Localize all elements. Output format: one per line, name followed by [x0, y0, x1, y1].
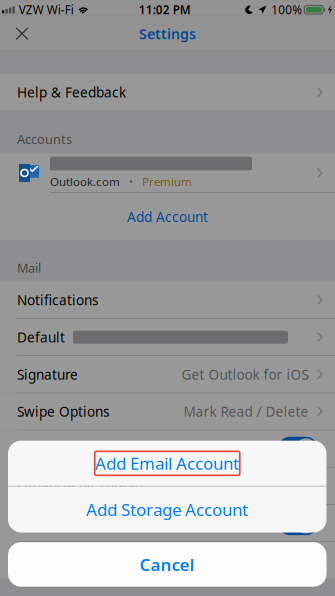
- button[interactable]: Outlook.com: [0, 153, 335, 192]
- button[interactable]: Focused Inbox: [0, 430, 335, 467]
- button[interactable]: Swipe Options: [0, 393, 335, 430]
- staticText: Mark Read / Delete: [184, 402, 309, 421]
- staticText: Get Outlook for iOS: [182, 365, 309, 384]
- staticText: Focused Inbox: [17, 439, 110, 458]
- staticText: Add Storage Account: [86, 498, 248, 521]
- staticText: Cancel: [140, 553, 195, 576]
- button[interactable]: Add Account: [0, 193, 335, 240]
- button[interactable]: Notifications: [0, 281, 335, 318]
- button[interactable]: Add Storage Account: [8, 487, 326, 532]
- staticText: Add Account: [127, 207, 208, 226]
- staticText: 100%: [271, 2, 302, 18]
- button[interactable]: Close: [0, 16, 44, 51]
- button[interactable]: Notifications: [0, 542, 335, 579]
- staticText: Default: [17, 328, 65, 346]
- button[interactable]: Mark As Read: [0, 505, 335, 541]
- staticText: Add Email Account: [95, 452, 239, 475]
- button[interactable]: Add Email Account: [8, 441, 326, 486]
- staticText: Mail: [17, 259, 41, 276]
- button[interactable]: Cancel: [8, 542, 326, 587]
- button[interactable]: Help & Feedback: [0, 74, 335, 110]
- button[interactable]: Signature: [0, 356, 335, 393]
- staticText: Notifications: [17, 291, 99, 309]
- staticText: Mark As Read: [17, 514, 106, 532]
- staticText: Organize by Thread: [17, 477, 143, 495]
- staticText: •: [120, 174, 142, 189]
- staticText: Swipe Options: [17, 402, 110, 421]
- staticText: Outlook.com: [50, 174, 120, 189]
- staticText: Premium: [142, 174, 192, 189]
- staticText: VZW Wi-Fi: [19, 2, 74, 18]
- button[interactable]: Default: [0, 319, 335, 355]
- staticText: Accounts: [17, 130, 72, 148]
- staticText: Signature: [17, 365, 78, 384]
- button[interactable]: Organize by Thread: [0, 468, 335, 504]
- staticText: Help & Feedback: [17, 83, 126, 101]
- staticText: 11:02 PM: [139, 2, 191, 18]
- staticText: Settings: [139, 24, 196, 43]
